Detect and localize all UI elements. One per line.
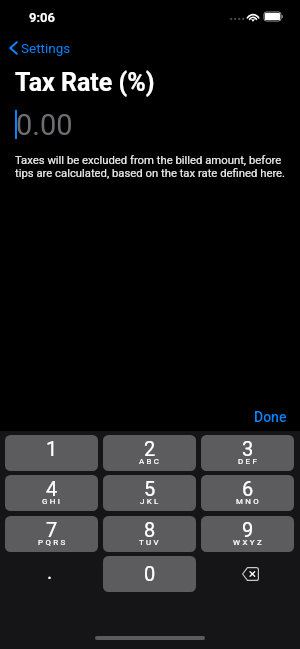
staticText: Done bbox=[254, 409, 287, 425]
button[interactable]: 4 bbox=[5, 475, 98, 511]
button[interactable]: Settings bbox=[5, 36, 77, 60]
staticText: . bbox=[47, 560, 53, 583]
staticText: 9 bbox=[242, 518, 254, 541]
staticText: TUV bbox=[139, 538, 162, 547]
button[interactable]: 5 bbox=[103, 475, 196, 511]
staticText: DEF bbox=[238, 457, 260, 466]
button[interactable]: Done bbox=[241, 404, 300, 430]
button[interactable]: 7 bbox=[5, 516, 98, 552]
button[interactable]: 0 bbox=[103, 556, 196, 592]
staticText: 4 bbox=[46, 477, 58, 500]
staticText: Tax Rate (%) bbox=[15, 68, 155, 97]
staticText: 0.00 bbox=[16, 108, 73, 142]
staticText: 8 bbox=[144, 518, 156, 541]
staticText: 6 bbox=[242, 477, 254, 500]
staticText: PQRS bbox=[38, 538, 68, 547]
staticText: Taxes will be excluded from the billed a… bbox=[15, 154, 286, 180]
staticText: 7 bbox=[46, 518, 58, 541]
button[interactable]: Delete bbox=[201, 556, 294, 592]
button[interactable]: . bbox=[5, 556, 98, 592]
staticText: 9:06 bbox=[29, 10, 55, 25]
staticText: 1 bbox=[46, 437, 58, 460]
button[interactable]: 2 bbox=[103, 435, 196, 471]
staticText: 2 bbox=[144, 437, 156, 460]
button[interactable]: 9 bbox=[201, 516, 294, 552]
button[interactable]: Tax rate input field bbox=[0, 104, 300, 144]
button[interactable]: 3 bbox=[201, 435, 294, 471]
staticText: JKL bbox=[140, 497, 161, 506]
button[interactable]: 8 bbox=[103, 516, 196, 552]
staticText: Settings bbox=[21, 40, 71, 56]
staticText: GHI bbox=[42, 497, 63, 506]
staticText: ABC bbox=[139, 457, 162, 466]
staticText: WXYZ bbox=[233, 538, 265, 547]
staticText: 3 bbox=[242, 437, 254, 460]
button[interactable]: 1 bbox=[5, 435, 98, 471]
button[interactable]: 6 bbox=[201, 475, 294, 511]
staticText: 0 bbox=[144, 562, 156, 585]
staticText: MNO bbox=[236, 497, 262, 506]
staticText: 5 bbox=[144, 477, 156, 500]
